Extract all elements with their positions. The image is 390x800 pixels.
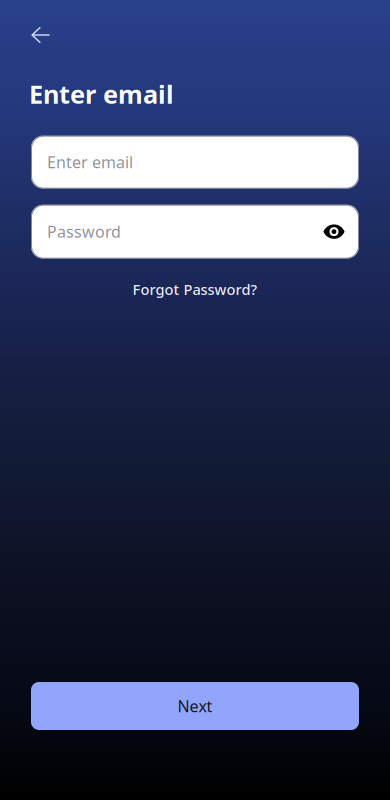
staticText: Enter email (47, 151, 133, 173)
staticText: Next (177, 695, 212, 717)
button[interactable]: Back (31, 18, 69, 52)
staticText: Enter email (29, 77, 174, 111)
button[interactable]: Show password (319, 217, 349, 247)
button[interactable]: Next (31, 682, 359, 730)
staticText: Password (47, 221, 121, 242)
button[interactable]: Forgot Password? (126, 277, 263, 302)
staticText: Forgot Password? (132, 280, 257, 299)
